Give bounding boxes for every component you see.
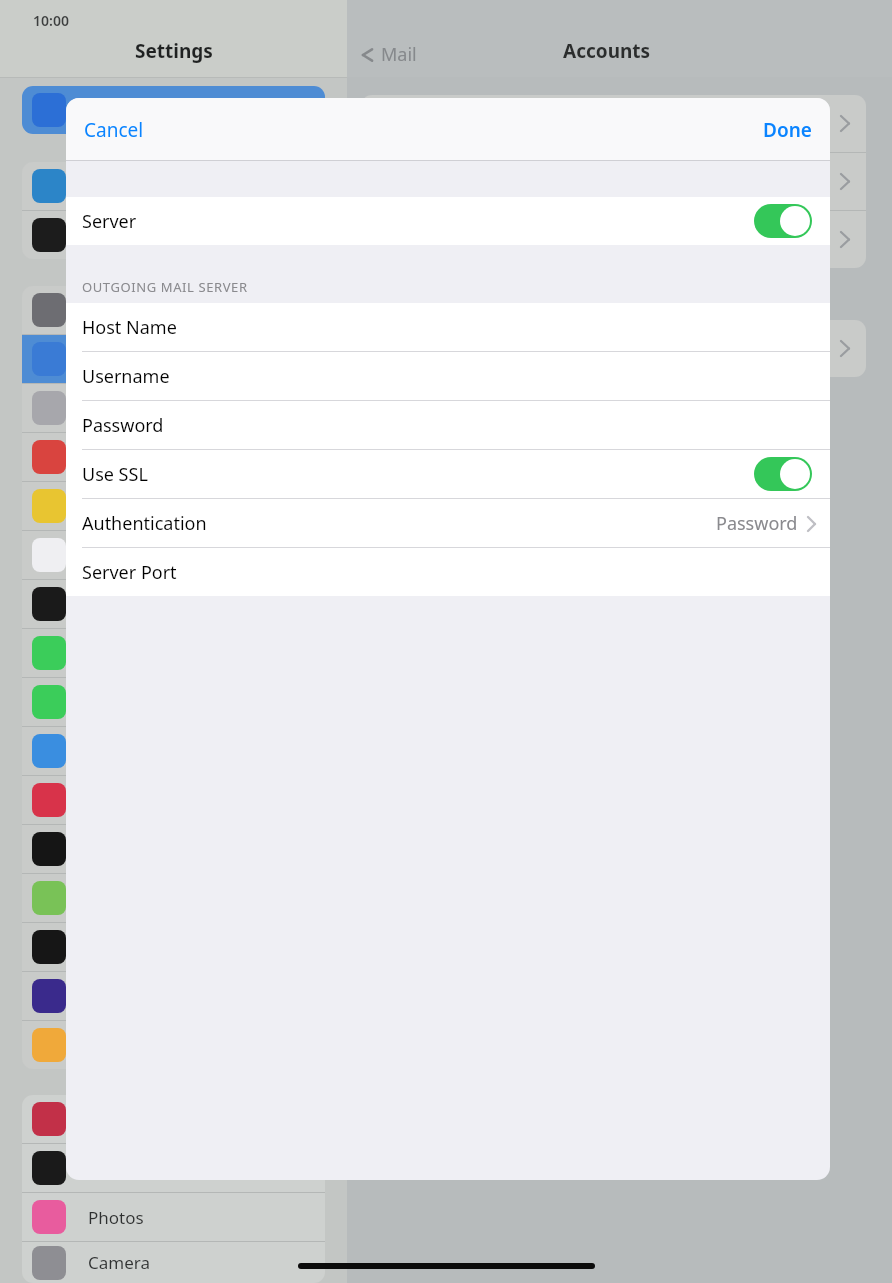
staticText: Host Name: [82, 315, 177, 340]
button[interactable]: Privacy: [22, 86, 325, 134]
button[interactable]: Account: [361, 211, 866, 268]
button[interactable]: Server Port: [66, 548, 830, 596]
staticText: Cancel: [84, 117, 144, 143]
button[interactable]: Setting: [22, 923, 325, 971]
button[interactable]: Setting: [22, 335, 325, 383]
staticText: OUTGOING MAIL SERVER: [82, 278, 248, 296]
staticText: Server Port: [82, 560, 177, 585]
button[interactable]: Setting: [22, 629, 325, 677]
button[interactable]: Account: [361, 153, 866, 210]
staticText: 10:00: [33, 11, 69, 30]
staticText: Use SSL: [82, 462, 148, 487]
button[interactable]: Setting: [22, 384, 325, 432]
staticText: Photos: [88, 1206, 144, 1229]
button[interactable]: Setting: [22, 1095, 325, 1143]
button[interactable]: Use SSL, on: [754, 457, 812, 491]
button[interactable]: Setting: [22, 482, 325, 530]
button[interactable]: Server, on: [754, 204, 812, 238]
button[interactable]: Photos: [22, 1193, 325, 1241]
button[interactable]: Host Name: [66, 303, 830, 351]
button[interactable]: Account: [361, 95, 866, 152]
button[interactable]: Setting: [22, 580, 325, 628]
staticText: Camera: [88, 1251, 150, 1274]
button[interactable]: Account: [361, 320, 866, 377]
staticText: Username: [82, 364, 170, 389]
staticText: Authentication: [82, 511, 207, 536]
staticText: Server: [82, 209, 137, 234]
staticText: Password: [82, 413, 164, 438]
button[interactable]: Cancel: [66, 106, 162, 154]
staticText: Settings: [135, 38, 213, 64]
button[interactable]: Setting: [22, 972, 325, 1020]
button[interactable]: Done: [745, 106, 830, 154]
button[interactable]: Setting: [22, 1021, 325, 1069]
button[interactable]: Setting: [22, 1144, 325, 1192]
button[interactable]: Username: [66, 352, 830, 400]
button[interactable]: Setting: [22, 776, 325, 824]
button[interactable]: Setting: [22, 211, 325, 259]
button[interactable]: Setting: [22, 531, 325, 579]
button[interactable]: Setting: [22, 678, 325, 726]
button[interactable]: Setting: [22, 286, 325, 334]
staticText: Password: [716, 511, 798, 536]
staticText: Done: [763, 117, 812, 143]
staticText: Mail: [381, 42, 417, 67]
button[interactable]: Authentication: [66, 499, 830, 547]
button[interactable]: Setting: [22, 825, 325, 873]
button[interactable]: Setting: [22, 433, 325, 481]
button[interactable]: Setting: [22, 727, 325, 775]
button[interactable]: Setting: [22, 162, 325, 210]
staticText: Accounts: [563, 38, 651, 64]
button[interactable]: Setting: [22, 874, 325, 922]
button[interactable]: Camera: [22, 1242, 325, 1283]
button[interactable]: Password: [66, 401, 830, 449]
